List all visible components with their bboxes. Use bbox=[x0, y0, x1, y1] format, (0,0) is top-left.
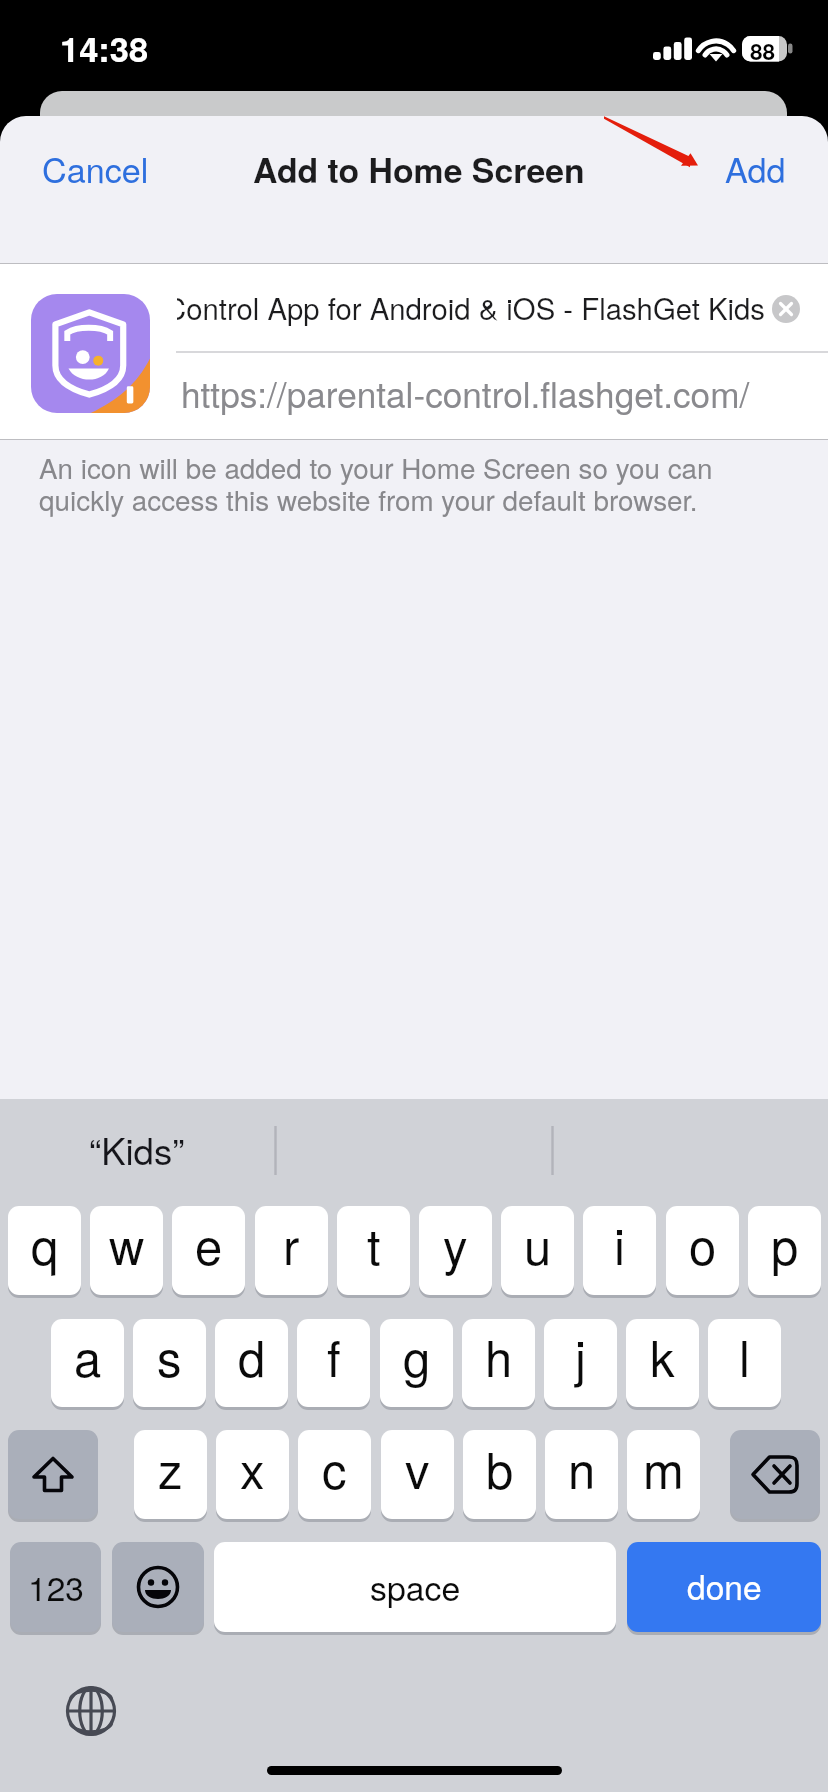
button[interactable]: https://parental-control.flashget.com/ bbox=[177, 356, 828, 418]
button[interactable]: h bbox=[462, 1319, 535, 1407]
staticText: o bbox=[689, 1209, 717, 1279]
button[interactable]: done bbox=[627, 1542, 821, 1632]
staticText: 88 bbox=[750, 35, 776, 67]
staticText: Add bbox=[725, 144, 786, 193]
button[interactable]: Control App for Android & iOS - FlashGet… bbox=[177, 286, 765, 338]
staticText: c bbox=[322, 1433, 347, 1503]
button[interactable]: n bbox=[545, 1430, 618, 1519]
button[interactable]: c bbox=[298, 1430, 371, 1519]
staticText: Add to Home Screen bbox=[253, 145, 585, 193]
button[interactable]: z bbox=[134, 1430, 207, 1519]
button[interactable]: x bbox=[216, 1430, 289, 1519]
button[interactable]: k bbox=[626, 1319, 699, 1407]
staticText: https://parental-control.flashget.com/ bbox=[181, 368, 750, 418]
button[interactable]: a bbox=[51, 1319, 124, 1407]
staticText: e bbox=[195, 1209, 223, 1279]
button[interactable]: i bbox=[583, 1206, 656, 1295]
button[interactable]: 123 bbox=[10, 1542, 101, 1632]
staticText: p bbox=[771, 1209, 799, 1279]
staticText: i bbox=[614, 1209, 625, 1279]
button[interactable]: delete bbox=[730, 1430, 820, 1519]
button[interactable]: u bbox=[501, 1206, 574, 1295]
button[interactable]: q bbox=[8, 1206, 81, 1295]
staticText: An icon will be added to your Home Scree… bbox=[39, 447, 713, 519]
staticText: s bbox=[157, 1321, 182, 1391]
button[interactable]: Clear text bbox=[772, 295, 800, 323]
button[interactable]: b bbox=[463, 1430, 536, 1519]
staticText: x bbox=[240, 1433, 265, 1503]
staticText: n bbox=[568, 1433, 596, 1503]
staticText: d bbox=[238, 1321, 266, 1391]
button[interactable]: l bbox=[708, 1319, 781, 1407]
staticText: u bbox=[524, 1209, 552, 1279]
button[interactable]: emoji bbox=[112, 1542, 204, 1632]
staticText: Cancel bbox=[42, 144, 149, 193]
staticText: space bbox=[370, 1562, 461, 1610]
staticText: f bbox=[327, 1321, 341, 1391]
button[interactable]: Add bbox=[705, 130, 806, 207]
button[interactable]: p bbox=[748, 1206, 821, 1295]
button[interactable]: g bbox=[380, 1319, 453, 1407]
button[interactable]: e bbox=[172, 1206, 245, 1295]
staticText: g bbox=[403, 1321, 431, 1391]
staticText: Control App for Android & iOS - FlashGet… bbox=[177, 286, 765, 328]
staticText: v bbox=[405, 1433, 430, 1503]
staticText: j bbox=[575, 1321, 586, 1391]
button[interactable]: s bbox=[133, 1319, 206, 1407]
staticText: k bbox=[650, 1321, 675, 1391]
button[interactable]: Switch keyboard bbox=[65, 1685, 117, 1737]
button[interactable]: y bbox=[419, 1206, 492, 1295]
staticText: b bbox=[486, 1433, 514, 1503]
staticText: 123 bbox=[28, 1563, 84, 1611]
button[interactable]: r bbox=[255, 1206, 328, 1295]
staticText: z bbox=[158, 1433, 183, 1503]
button[interactable]: shift bbox=[8, 1430, 98, 1519]
button[interactable]: w bbox=[90, 1206, 163, 1295]
staticText: h bbox=[485, 1321, 513, 1391]
staticText: r bbox=[283, 1209, 300, 1279]
button[interactable]: j bbox=[544, 1319, 617, 1407]
staticText: y bbox=[443, 1209, 468, 1279]
button[interactable]: v bbox=[381, 1430, 454, 1519]
button[interactable]: o bbox=[666, 1206, 739, 1295]
button[interactable]: m bbox=[627, 1430, 700, 1519]
staticText: 14:38 bbox=[60, 23, 149, 72]
button[interactable]: d bbox=[215, 1319, 288, 1407]
button[interactable]: t bbox=[337, 1206, 410, 1295]
staticText: w bbox=[109, 1209, 145, 1279]
staticText: a bbox=[74, 1321, 102, 1391]
staticText: “Kids” bbox=[89, 1123, 185, 1175]
staticText: m bbox=[643, 1433, 684, 1503]
staticText: done bbox=[687, 1562, 762, 1610]
staticText: q bbox=[31, 1209, 59, 1279]
button[interactable]: f bbox=[297, 1319, 370, 1407]
button[interactable]: Cancel bbox=[22, 130, 169, 207]
staticText: l bbox=[739, 1321, 750, 1391]
button[interactable]: space bbox=[214, 1542, 616, 1632]
staticText: t bbox=[367, 1209, 381, 1279]
